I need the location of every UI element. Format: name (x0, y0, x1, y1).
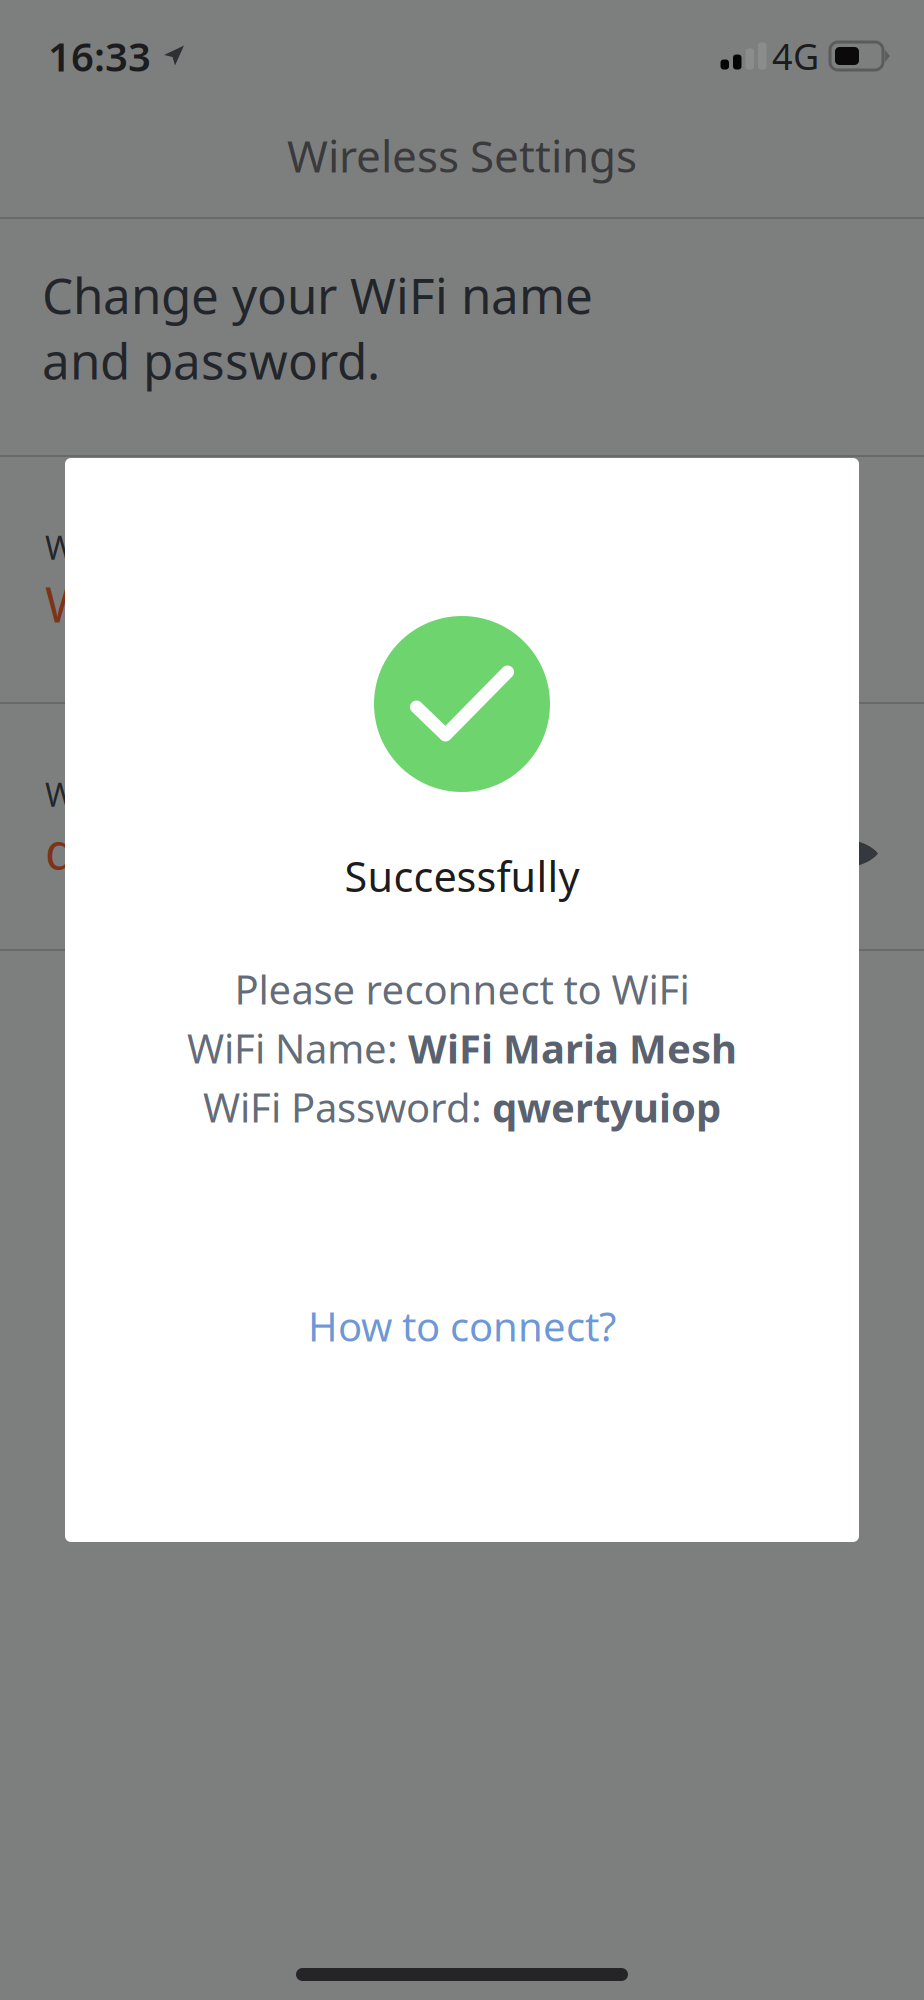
button[interactable]: How to connect? (297, 1291, 627, 1361)
staticText: Change your WiFi name and password. (42, 262, 593, 393)
staticText: Wireless Settings (287, 126, 637, 185)
button[interactable]: WiFi Password (0, 704, 924, 949)
staticText: WiFi Name: (187, 1021, 398, 1074)
staticText: WiFi Maria Mesh (398, 1021, 737, 1074)
staticText: WiFi Password (45, 773, 260, 815)
button[interactable]: WiFi Name (0, 457, 924, 702)
staticText: How to connect? (308, 1299, 616, 1352)
staticText: WiFi Password: (203, 1080, 482, 1133)
staticText: qwertyuiop (482, 1080, 721, 1133)
staticText: qwertyuiop (45, 817, 308, 883)
staticText: 16:33 (48, 29, 151, 82)
staticText: WiFi Name (45, 526, 206, 568)
staticText: WiFi Maria Mesh (45, 570, 430, 636)
staticText: 4G (772, 32, 819, 80)
staticText: Successfully (344, 849, 579, 903)
staticText: Please reconnect to WiFi (234, 962, 689, 1015)
